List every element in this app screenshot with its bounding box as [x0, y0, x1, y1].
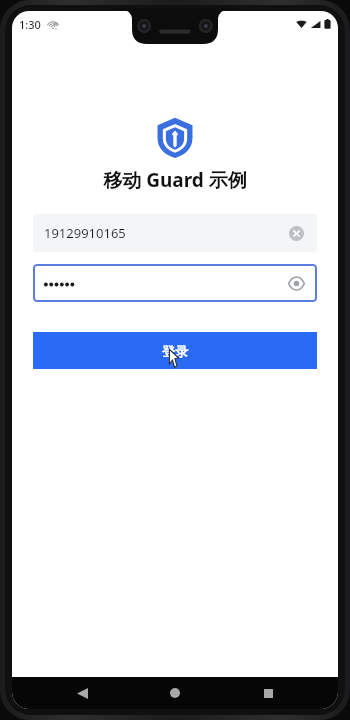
button[interactable]: Clear phone number	[286, 223, 306, 243]
button[interactable]: Show password	[33, 264, 317, 302]
staticText: 1:30	[19, 17, 41, 32]
button[interactable]: 登录	[33, 332, 317, 369]
staticText: 登录	[162, 343, 188, 359]
button[interactable]: Back	[59, 677, 105, 709]
button[interactable]: Home	[152, 677, 198, 709]
button[interactable]: 19129910165	[33, 214, 317, 252]
staticText: 移动 Guard 示例	[103, 167, 247, 193]
button[interactable]: Recent apps	[245, 677, 291, 709]
button[interactable]: Show password	[286, 273, 306, 293]
staticText: 19129910165	[44, 224, 286, 242]
